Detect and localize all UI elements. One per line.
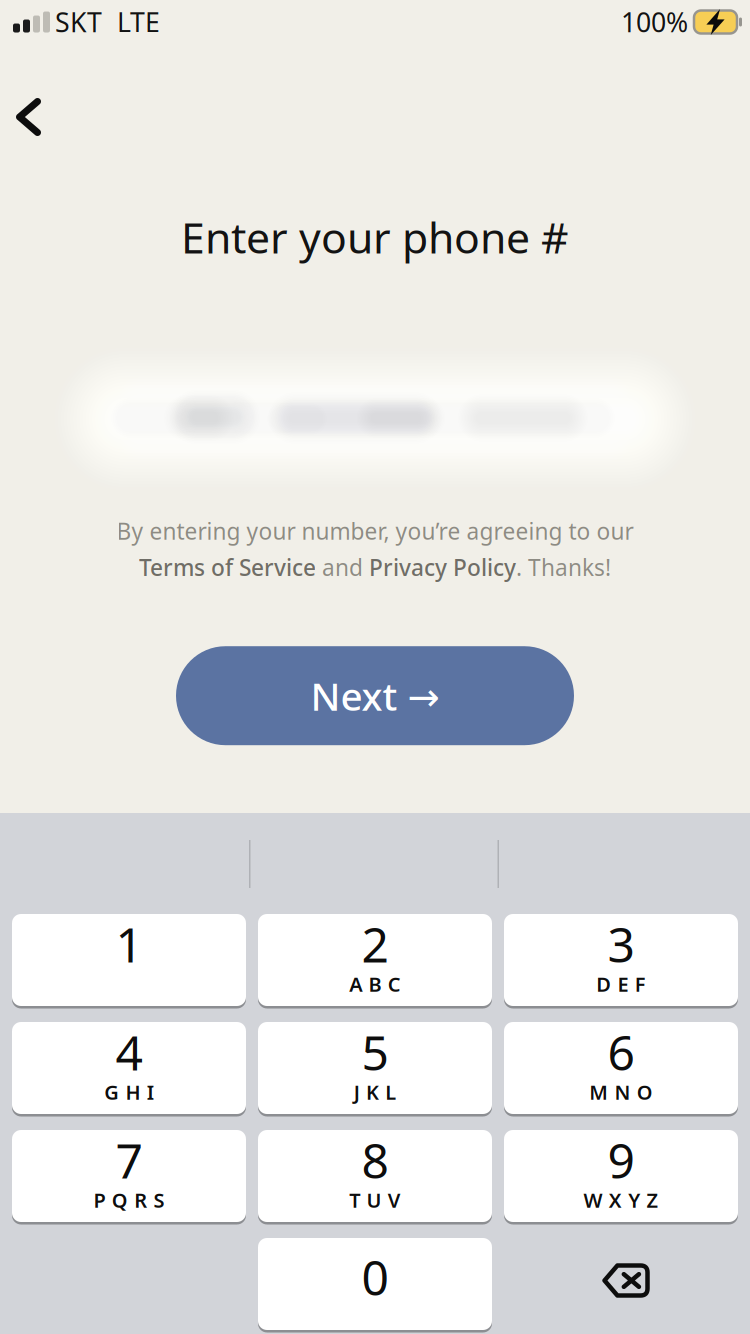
staticText: 4 bbox=[115, 1020, 142, 1084]
staticText: PQRS bbox=[94, 1187, 164, 1213]
button[interactable]: 7 bbox=[12, 1130, 246, 1225]
staticText: 9 bbox=[607, 1128, 634, 1192]
button[interactable]: 6 bbox=[504, 1022, 738, 1117]
button[interactable]: 4 bbox=[12, 1022, 246, 1117]
staticText: 100% bbox=[621, 4, 688, 40]
button[interactable]: 9 bbox=[504, 1130, 738, 1225]
staticText: ABC bbox=[349, 971, 401, 997]
staticText: 3 bbox=[607, 912, 634, 976]
staticText: WXYZ bbox=[584, 1187, 658, 1213]
staticText: LTE bbox=[117, 4, 160, 40]
button[interactable]: 5 bbox=[258, 1022, 492, 1117]
staticText: and bbox=[316, 552, 369, 582]
staticText: 1 bbox=[115, 912, 142, 976]
button[interactable]: Next → bbox=[176, 646, 574, 745]
staticText: Enter your phone # bbox=[181, 209, 569, 265]
staticText: SKT bbox=[55, 4, 102, 40]
button[interactable]: Delete bbox=[504, 1239, 738, 1331]
staticText: . Thanks! bbox=[516, 552, 611, 582]
button[interactable]: 1 bbox=[12, 914, 246, 1009]
staticText: Next → bbox=[310, 670, 439, 721]
staticText: TUV bbox=[349, 1187, 401, 1213]
button[interactable]: 3 bbox=[504, 914, 738, 1009]
button[interactable]: 8 bbox=[258, 1130, 492, 1225]
staticText: 6 bbox=[607, 1020, 634, 1084]
staticText: DEF bbox=[596, 971, 646, 997]
staticText: 8 bbox=[361, 1128, 388, 1192]
staticText: 0 bbox=[361, 1245, 388, 1309]
staticText: GHI bbox=[104, 1079, 154, 1105]
staticText: 5 bbox=[361, 1020, 388, 1084]
staticText: Privacy Policy bbox=[369, 552, 516, 582]
staticText: JKL bbox=[354, 1079, 396, 1105]
staticText: Terms of Service bbox=[139, 552, 316, 582]
staticText: 7 bbox=[115, 1128, 142, 1192]
button[interactable]: 2 bbox=[258, 914, 492, 1009]
staticText: MNO bbox=[589, 1079, 653, 1105]
button[interactable]: Back bbox=[0, 84, 63, 150]
staticText: By entering your number, you’re agreeing… bbox=[116, 516, 633, 546]
button[interactable]: 0 bbox=[258, 1238, 492, 1333]
staticText: 2 bbox=[361, 912, 388, 976]
